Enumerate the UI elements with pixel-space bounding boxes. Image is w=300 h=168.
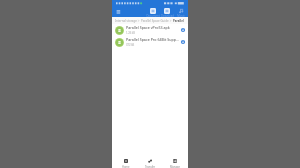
staticText: Home — [122, 165, 130, 168]
button[interactable]: Menu — [115, 10, 121, 16]
button[interactable]: Download — [160, 8, 174, 17]
staticText: Transfer — [145, 165, 156, 168]
staticText: 1.26 kB — [126, 31, 135, 35]
staticText: Parallel Space Guide — [141, 19, 169, 23]
button[interactable]: Music — [174, 8, 188, 17]
button[interactable]: Transfer — [139, 159, 161, 168]
button[interactable]: Download — [180, 39, 186, 45]
staticText: Parallel Space vPro53.apk — [126, 25, 170, 30]
staticText: Download — [161, 14, 174, 17]
staticText: Music — [177, 14, 185, 17]
staticText: > — [137, 19, 141, 23]
staticText: Parallel Space Pro 64Bit Support Pro... — [126, 37, 179, 42]
button[interactable]: Parallel Space Pro 64Bit Support Pro... — [112, 36, 188, 48]
button[interactable]: Download — [180, 27, 186, 33]
staticText: Parallel Space — [173, 19, 188, 23]
staticText: > — [169, 19, 173, 23]
staticText: Internal storage — [115, 19, 137, 23]
button[interactable]: Manage — [164, 159, 186, 168]
staticText: Document — [146, 14, 160, 17]
button[interactable]: Home — [115, 159, 137, 168]
button[interactable]: Document — [146, 8, 160, 17]
button[interactable]: Parallel Space vPro53.apk — [112, 24, 188, 36]
staticText: Manage — [170, 165, 180, 168]
staticText: 372 kB — [126, 43, 135, 47]
